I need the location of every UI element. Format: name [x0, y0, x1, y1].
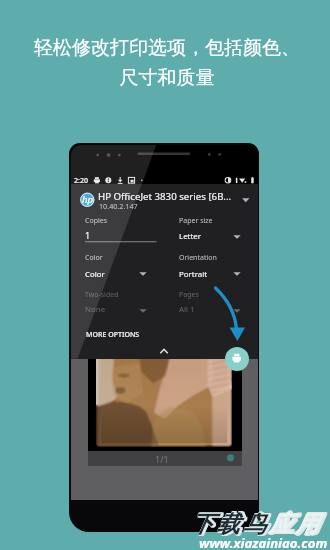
staticText: hp: [82, 193, 94, 206]
staticText: 下载鸟应用: [191, 511, 322, 540]
staticText: None: [85, 304, 106, 315]
staticText: 下载鸟应用: [189, 509, 320, 538]
staticText: Letter: [179, 231, 201, 242]
staticText: 下载鸟应用: [190, 509, 321, 538]
staticText: MORE OPTIONS: [86, 330, 140, 340]
staticText: 10.40.2.147: [99, 201, 138, 211]
staticText: 下载鸟应用: [190, 511, 321, 540]
staticText: 下载鸟应用: [190, 510, 321, 539]
staticText: 下载鸟应用: [191, 510, 322, 539]
staticText: All 1: [179, 304, 195, 315]
staticText: 2:20: [74, 176, 88, 186]
staticText: 下载鸟应用: [191, 509, 322, 538]
staticText: 1/1: [155, 453, 169, 465]
staticText: Color: [85, 269, 105, 280]
button[interactable]: Two-sided: [82, 287, 162, 320]
staticText: 轻松修改打印选项，包括颜色、 尺寸和质量: [2, 36, 330, 106]
button[interactable]: Orientation: [176, 250, 256, 283]
button[interactable]: Copies: [82, 213, 162, 246]
button[interactable]: Collapse options: [153, 345, 175, 359]
staticText: Orientation: [179, 253, 217, 263]
staticText: 1: [85, 229, 91, 241]
staticText: HP OfficeJet 3830 series [6B...: [98, 190, 232, 203]
staticText: Portrait: [179, 269, 208, 280]
button[interactable]: MORE OPTIONS: [83, 327, 153, 341]
staticText: Copies: [85, 216, 108, 226]
staticText: Color: [85, 253, 103, 263]
staticText: Two-sided: [85, 290, 119, 300]
button[interactable]: Color: [82, 250, 162, 283]
staticText: www.xiazainiao.com: [199, 534, 328, 550]
staticText: Paper size: [179, 216, 213, 226]
button[interactable]: Pages: [176, 287, 256, 320]
button[interactable]: Page preview: [88, 359, 242, 451]
staticText: 下载鸟应用: [189, 511, 320, 540]
staticText: 下载鸟应用: [189, 510, 320, 539]
button[interactable]: hp: [71, 188, 258, 214]
button[interactable]: Paper size: [176, 213, 256, 246]
button[interactable]: Print: [225, 347, 249, 371]
staticText: Pages: [179, 290, 199, 300]
